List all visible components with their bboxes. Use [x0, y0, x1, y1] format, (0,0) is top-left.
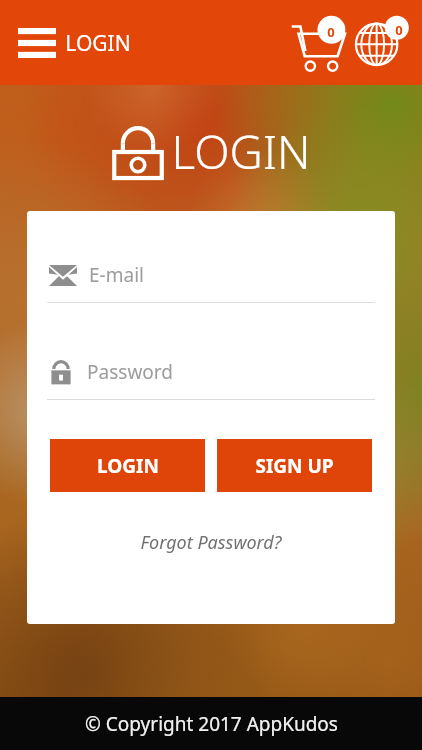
- staticText: E-mail: [89, 262, 144, 288]
- staticText: LOGIN: [65, 29, 131, 58]
- staticText: LOGIN: [171, 120, 311, 183]
- staticText: LOGIN: [97, 453, 159, 479]
- button[interactable]: E-mail: [49, 256, 373, 294]
- button[interactable]: Forgot Password?: [126, 526, 296, 559]
- button[interactable]: Password: [49, 353, 373, 391]
- staticText: © Copyright 2017 AppKudos: [85, 711, 338, 737]
- button[interactable]: LOGIN: [50, 439, 205, 492]
- staticText: 0: [395, 21, 403, 39]
- button[interactable]: Cart: [288, 10, 350, 76]
- staticText: Password: [87, 359, 173, 385]
- staticText: 0: [327, 23, 335, 41]
- button[interactable]: SIGN UP: [217, 439, 372, 492]
- staticText: SIGN UP: [255, 453, 334, 479]
- button[interactable]: Language: [352, 10, 414, 76]
- button[interactable]: LOGIN: [0, 20, 141, 66]
- staticText: Forgot Password?: [140, 530, 282, 555]
